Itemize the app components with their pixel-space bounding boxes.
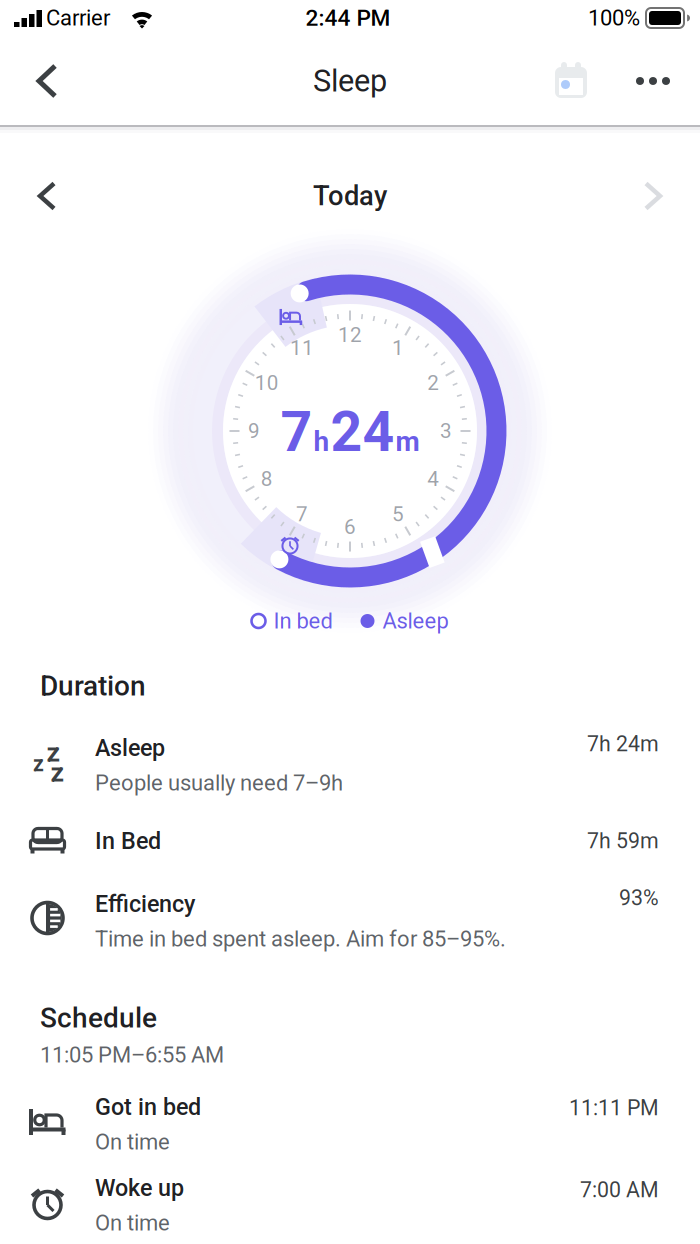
staticText: z <box>46 737 60 768</box>
staticText: Asleep <box>382 608 448 634</box>
staticText: Asleep <box>95 734 165 762</box>
staticText: 11:05 PM–6:55 AM <box>40 1042 224 1068</box>
staticText: z <box>50 757 64 788</box>
staticText: 1 <box>392 336 404 360</box>
staticText: 7 <box>280 400 312 464</box>
staticText: Duration <box>40 670 146 702</box>
staticText: 11 <box>290 336 314 360</box>
staticText: 24 <box>330 400 394 464</box>
staticText: In bed <box>273 608 332 634</box>
staticText: 9 <box>248 419 260 443</box>
staticText: Schedule <box>40 1002 157 1034</box>
staticText: Time in bed spent asleep. Aim for 85–95%… <box>95 926 506 952</box>
staticText: Carrier <box>46 5 110 31</box>
staticText: h <box>313 425 329 458</box>
staticText: 7h 59m <box>587 828 659 853</box>
staticText: 4 <box>427 467 439 491</box>
staticText: Woke up <box>95 1174 184 1202</box>
staticText: 7h 24m <box>587 731 659 756</box>
staticText: 2 <box>427 371 439 395</box>
staticText: People usually need 7–9h <box>95 770 343 796</box>
staticText: 6 <box>344 515 356 539</box>
staticText: Today <box>313 180 387 212</box>
staticText: Sleep <box>313 63 387 99</box>
staticText: 93% <box>619 885 659 910</box>
staticText: 2:44 PM <box>305 5 390 31</box>
staticText: 3 <box>440 419 452 443</box>
staticText: 10 <box>255 371 279 395</box>
staticText: 12 <box>338 323 362 347</box>
staticText: Got in bed <box>95 1093 201 1121</box>
staticText: 5 <box>392 502 404 526</box>
staticText: m <box>395 425 419 458</box>
staticText: In Bed <box>95 827 161 855</box>
staticText: On time <box>95 1129 170 1155</box>
staticText: On time <box>95 1210 170 1236</box>
staticText: 11:11 PM <box>569 1095 659 1120</box>
staticText: 8 <box>261 467 273 491</box>
staticText: 100% <box>588 5 640 31</box>
staticText: Efficiency <box>95 890 195 918</box>
staticText: z <box>33 751 44 776</box>
staticText: 7 <box>296 502 308 526</box>
staticText: 7:00 AM <box>580 1177 659 1202</box>
